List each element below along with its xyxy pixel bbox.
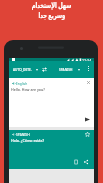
staticText: Hola. ¿Cómo estás? bbox=[11, 138, 45, 143]
button[interactable]: Favorite bbox=[83, 130, 91, 138]
button[interactable]: Copy bbox=[72, 158, 80, 166]
button[interactable]: SPANISH bbox=[11, 131, 31, 137]
staticText: English bbox=[16, 81, 28, 85]
staticText: وسريع جدا bbox=[38, 10, 65, 20]
button[interactable]: Translate bbox=[83, 115, 91, 123]
button[interactable]: Swap languages bbox=[40, 65, 48, 73]
staticText: 12:34 bbox=[82, 58, 92, 61]
button[interactable]: SPANISH bbox=[58, 64, 81, 75]
staticText: Hello. How are you? bbox=[11, 87, 45, 92]
staticText: AUTO_DETE. bbox=[13, 68, 32, 72]
button[interactable]: More options bbox=[84, 64, 92, 72]
button[interactable]: Clear bbox=[85, 79, 92, 86]
staticText: سهل الإستخدام bbox=[31, 0, 71, 10]
staticText: SPANISH bbox=[59, 68, 73, 72]
staticText: SPANISH bbox=[16, 132, 30, 136]
button[interactable]: Share bbox=[82, 158, 90, 166]
button[interactable]: English bbox=[11, 80, 29, 86]
button[interactable]: AUTO_DETE. bbox=[12, 64, 39, 75]
